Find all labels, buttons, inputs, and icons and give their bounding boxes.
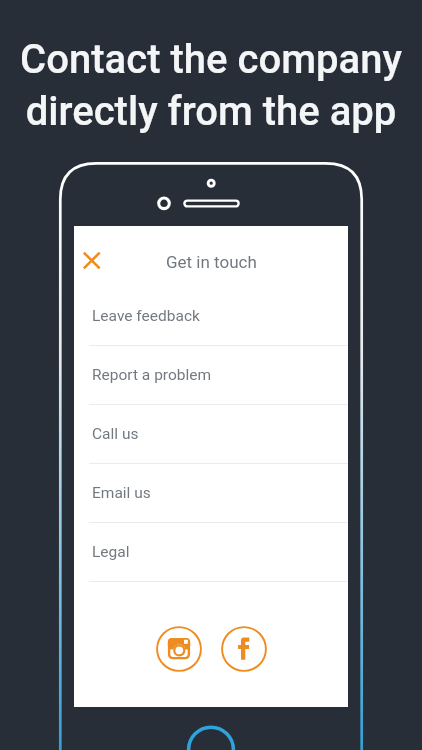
staticText: Report a problem — [92, 366, 212, 384]
button[interactable]: Instagram — [156, 626, 202, 672]
staticText: Call us — [92, 425, 139, 443]
staticText: Email us — [92, 484, 151, 502]
button[interactable]: Leave feedback — [74, 287, 348, 346]
button[interactable]: Report a problem — [74, 346, 348, 405]
button[interactable]: Call us — [74, 405, 348, 464]
button[interactable]: Close — [71, 230, 117, 276]
button[interactable]: Email us — [74, 464, 348, 523]
staticText: Get in touch — [166, 252, 257, 272]
staticText: Leave feedback — [92, 307, 200, 325]
button[interactable]: Legal — [74, 523, 348, 582]
staticText: Contact the company directly from the ap… — [0, 36, 422, 135]
staticText: Legal — [92, 543, 130, 561]
button[interactable]: Facebook — [221, 626, 267, 672]
